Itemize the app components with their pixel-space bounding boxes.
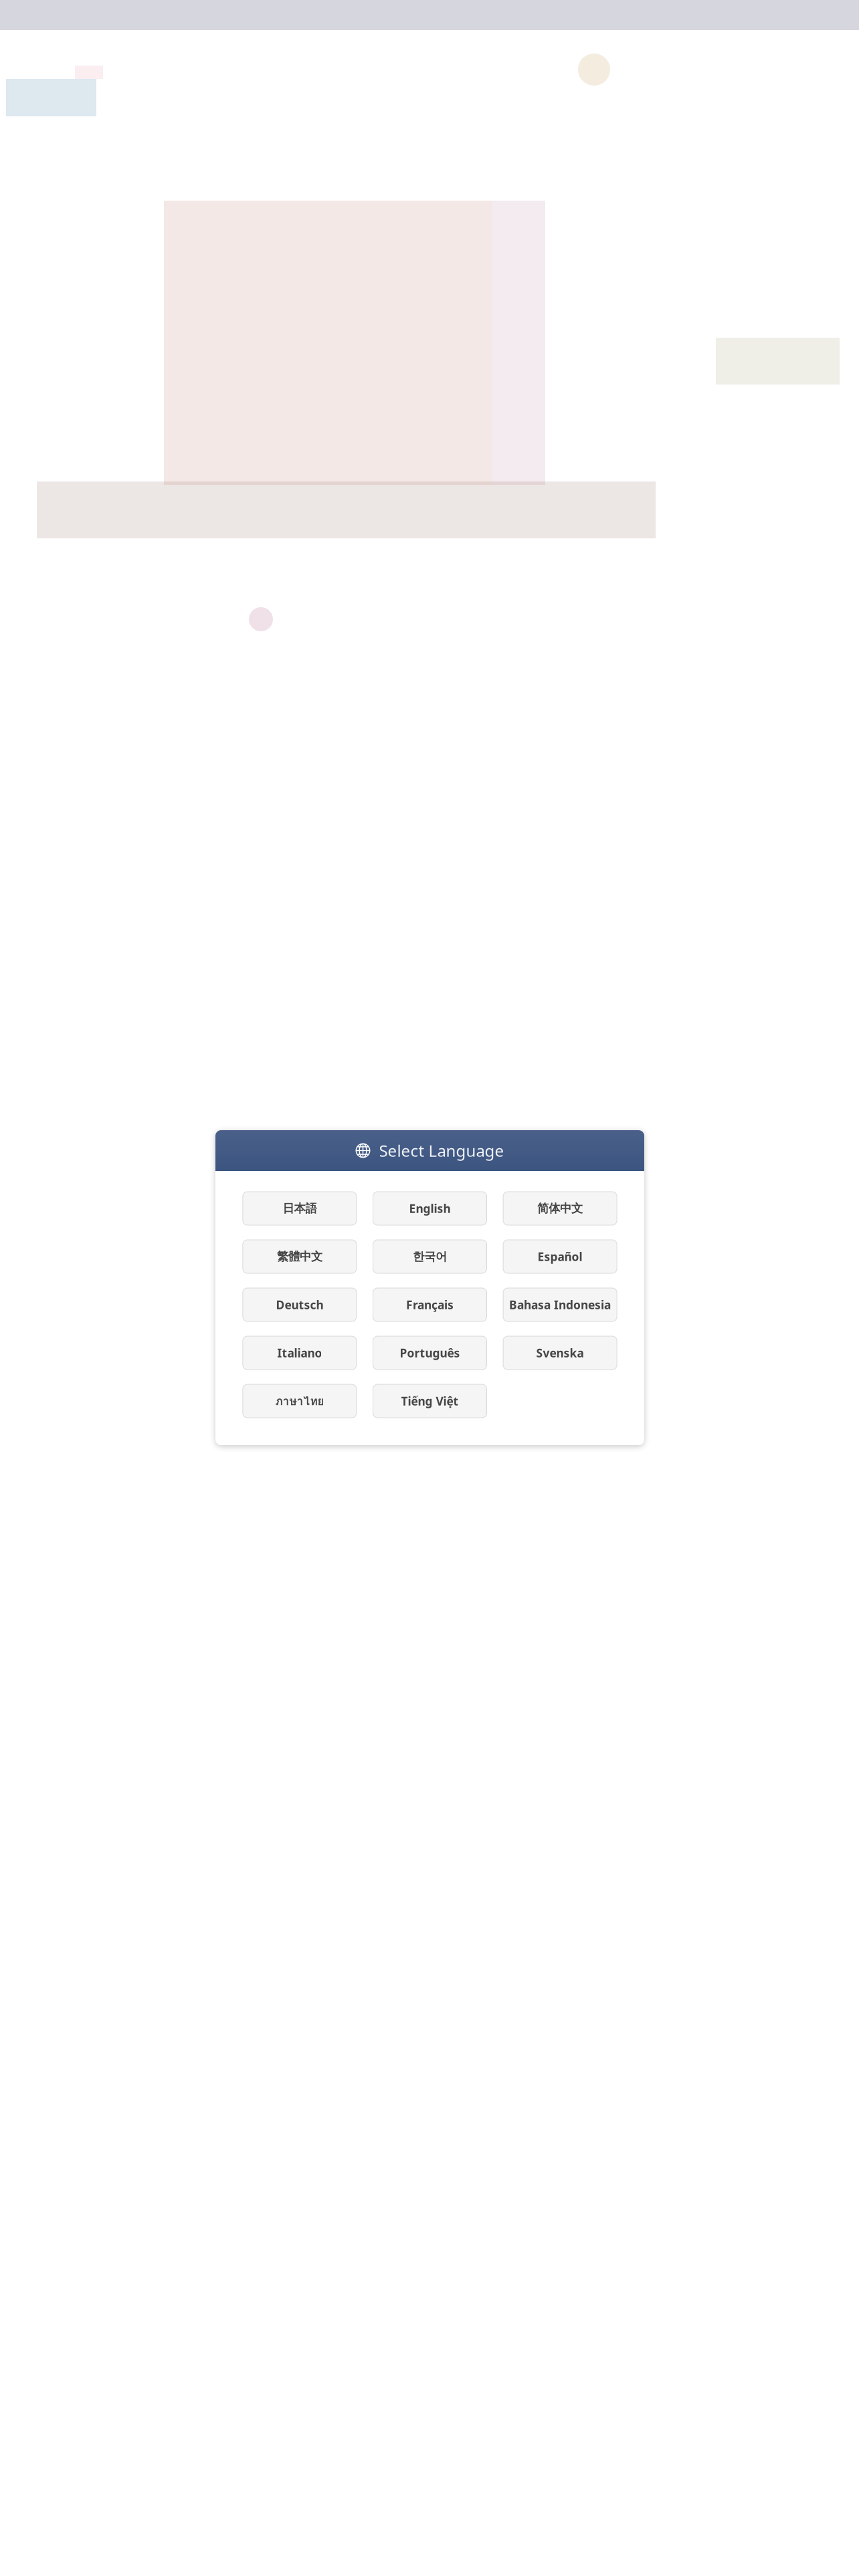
staticText: Select Language bbox=[379, 1140, 504, 1161]
button[interactable]: ภาษาไทย bbox=[243, 1384, 357, 1418]
staticText: 简体中文 bbox=[537, 1201, 583, 1216]
button[interactable]: 简体中文 bbox=[503, 1192, 617, 1225]
staticText: 日本語 bbox=[283, 1201, 317, 1216]
staticText: Deutsch bbox=[276, 1297, 323, 1312]
staticText: English bbox=[409, 1201, 451, 1216]
button[interactable]: English bbox=[373, 1192, 487, 1225]
button[interactable]: Deutsch bbox=[243, 1288, 357, 1321]
button[interactable]: 繁體中文 bbox=[243, 1240, 357, 1273]
staticText: Português bbox=[400, 1345, 460, 1361]
button[interactable]: 日本語 bbox=[243, 1192, 357, 1225]
button[interactable]: Tiếng Việt bbox=[373, 1384, 487, 1418]
button[interactable]: 한국어 bbox=[373, 1240, 487, 1273]
staticText: 한국어 bbox=[413, 1249, 447, 1264]
staticText: Tiếng Việt bbox=[401, 1393, 459, 1409]
staticText: Italiano bbox=[277, 1345, 322, 1361]
staticText: Svenska bbox=[536, 1345, 584, 1361]
staticText: 繁體中文 bbox=[277, 1249, 322, 1264]
staticText: ภาษาไทย bbox=[275, 1392, 324, 1410]
staticText: Français bbox=[406, 1297, 454, 1312]
button[interactable]: Português bbox=[373, 1336, 487, 1370]
button[interactable]: Svenska bbox=[503, 1336, 617, 1370]
button[interactable]: Italiano bbox=[243, 1336, 357, 1370]
button[interactable]: Français bbox=[373, 1288, 487, 1321]
button[interactable]: Español bbox=[503, 1240, 617, 1273]
staticText: Bahasa Indonesia bbox=[509, 1297, 611, 1312]
staticText: Español bbox=[538, 1249, 582, 1264]
button[interactable]: Bahasa Indonesia bbox=[503, 1288, 617, 1321]
